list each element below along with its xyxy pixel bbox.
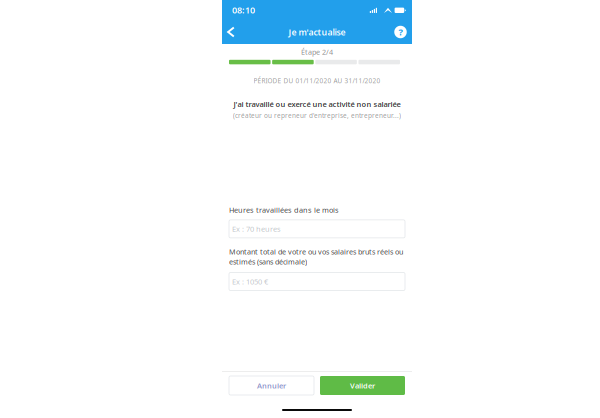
staticText: Étape 2/4: [301, 47, 333, 57]
staticText: Ex : 1050 €: [232, 276, 268, 287]
staticText: Montant total de votre ou vos salaires b…: [229, 247, 403, 266]
button[interactable]: Aide: [389, 20, 412, 44]
button[interactable]: Valider: [320, 376, 405, 395]
staticText: J'ai travaillé ou exercé une activité no…: [233, 99, 400, 109]
staticText: (créateur ou repreneur d'entreprise, ent…: [233, 111, 401, 120]
staticText: Valider: [350, 380, 375, 391]
staticText: Ex : 70 heures: [232, 224, 281, 234]
button[interactable]: Annuler: [229, 376, 314, 395]
staticText: 08:10: [232, 4, 255, 16]
staticText: Annuler: [257, 380, 286, 391]
staticText: PÉRIODE DU 01/11/2020 AU 31/11/2020: [253, 76, 380, 85]
button[interactable]: Retour: [222, 20, 240, 44]
staticText: Heures travaillées dans le mois: [229, 205, 339, 215]
staticText: ?: [398, 26, 402, 38]
staticText: Je m'actualise: [288, 26, 345, 38]
